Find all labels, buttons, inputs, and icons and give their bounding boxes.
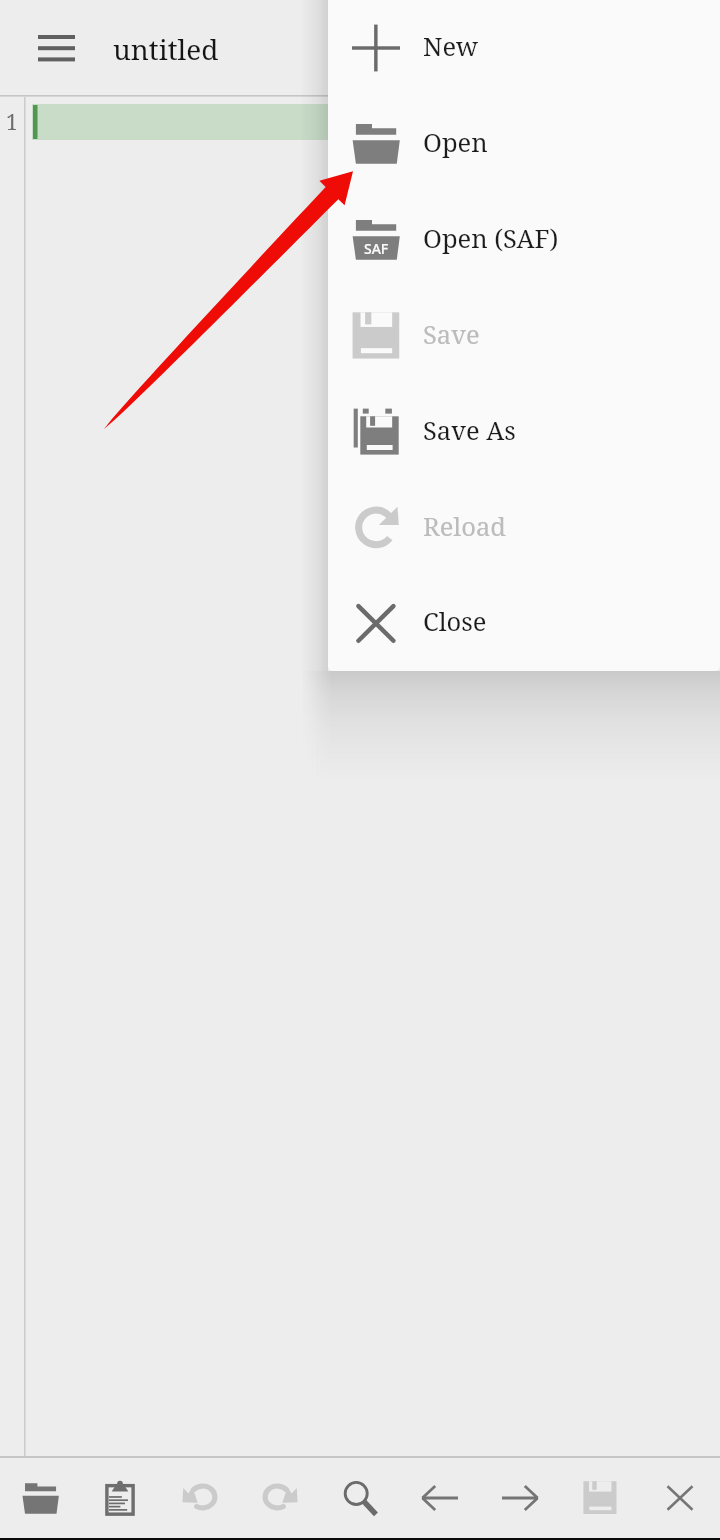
staticText: Close xyxy=(423,604,487,639)
button[interactable]: Paste xyxy=(80,1458,160,1538)
button[interactable]: Search xyxy=(320,1458,400,1538)
staticText: Save xyxy=(423,317,480,352)
button[interactable]: Back xyxy=(400,1458,480,1538)
button[interactable]: New xyxy=(328,0,720,96)
button[interactable]: Save xyxy=(560,1458,640,1538)
staticText: Open (SAF) xyxy=(423,221,559,256)
staticText: Open xyxy=(423,125,488,160)
staticText: Reload xyxy=(423,509,507,544)
button[interactable]: Open xyxy=(328,96,720,192)
button[interactable]: Reload xyxy=(328,480,720,576)
button[interactable]: Undo xyxy=(160,1458,240,1538)
button[interactable]: Forward xyxy=(480,1458,560,1538)
staticText: New xyxy=(423,29,479,64)
button[interactable]: SAF xyxy=(328,192,720,288)
button[interactable]: Redo xyxy=(240,1458,320,1538)
staticText: 1 xyxy=(6,108,18,137)
staticText: untitled xyxy=(113,30,219,68)
button[interactable]: Open file xyxy=(0,1458,80,1538)
button[interactable]: Save xyxy=(328,288,720,384)
button[interactable]: Close xyxy=(640,1458,720,1538)
button[interactable]: Close xyxy=(328,576,720,671)
button[interactable]: Menu xyxy=(0,0,112,95)
staticText: SAF xyxy=(364,239,389,258)
button[interactable]: Save As xyxy=(328,384,720,480)
staticText: Save As xyxy=(423,413,516,448)
